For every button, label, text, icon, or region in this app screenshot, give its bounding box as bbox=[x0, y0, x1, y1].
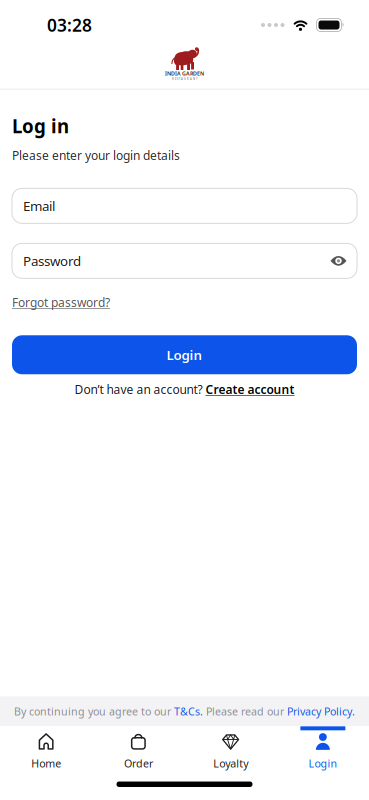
staticText: Login bbox=[166, 346, 202, 364]
staticText: By continuing you agree to our bbox=[14, 704, 174, 718]
staticText: R E S T A U R A N T bbox=[172, 77, 197, 81]
staticText: T&Cs. bbox=[174, 704, 203, 718]
staticText: Don’t have an account? bbox=[74, 381, 205, 397]
button[interactable]: Login bbox=[12, 335, 357, 374]
staticText: Please read our bbox=[203, 704, 287, 718]
staticText: Privacy Policy. bbox=[287, 704, 355, 718]
button[interactable]: Show password bbox=[328, 253, 349, 268]
staticText: Log in bbox=[12, 114, 69, 138]
button[interactable]: Forgot password? bbox=[12, 294, 110, 310]
button[interactable]: Home bbox=[0, 726, 92, 770]
button[interactable]: T&Cs. bbox=[174, 704, 203, 718]
staticText: Create account bbox=[205, 381, 294, 397]
button[interactable]: Login bbox=[277, 726, 369, 770]
staticText: Please enter your login details bbox=[12, 147, 180, 163]
staticText: Home bbox=[31, 756, 61, 770]
staticText: 03:28 bbox=[47, 13, 92, 36]
button[interactable]: Privacy Policy. bbox=[287, 704, 355, 718]
staticText: Forgot password? bbox=[12, 294, 110, 310]
staticText: Email bbox=[23, 197, 55, 215]
staticText: Password bbox=[23, 252, 81, 270]
staticText: Loyalty bbox=[213, 756, 248, 770]
staticText: Login bbox=[308, 756, 337, 770]
staticText: INDIA GARDEN bbox=[165, 70, 204, 77]
button[interactable]: Order bbox=[92, 726, 184, 770]
button[interactable]: Loyalty bbox=[184, 726, 277, 770]
staticText: Order bbox=[124, 756, 153, 770]
button[interactable]: Create account bbox=[205, 381, 294, 397]
